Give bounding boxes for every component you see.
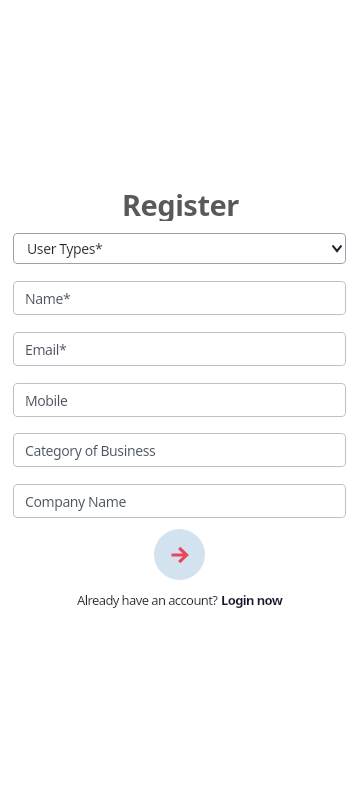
button[interactable]: User Types*: [13, 233, 346, 264]
staticText: Already have an account?: [77, 591, 221, 609]
staticText: Mobile: [25, 391, 68, 410]
staticText: Company Name: [25, 492, 126, 511]
staticText: User Types*: [27, 239, 103, 258]
staticText: Register: [122, 185, 239, 221]
staticText: Category of Business: [25, 441, 156, 460]
button[interactable]: Login now: [221, 591, 283, 609]
button[interactable]: Email*: [13, 332, 346, 366]
button[interactable]: Mobile: [13, 383, 346, 417]
button[interactable]: Company Name: [13, 484, 346, 518]
staticText: Name*: [25, 289, 71, 308]
staticText: Email*: [25, 340, 67, 359]
button[interactable]: [154, 529, 205, 580]
button[interactable]: Category of Business: [13, 433, 346, 467]
button[interactable]: Name*: [13, 281, 346, 315]
